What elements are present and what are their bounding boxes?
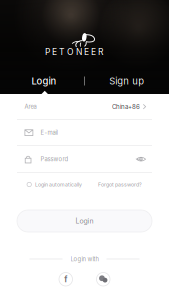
button[interactable]: Login [17, 210, 152, 232]
button[interactable]: Area [0, 94, 169, 120]
staticText: Login [75, 217, 93, 225]
staticText: Login [31, 75, 56, 87]
button[interactable]: Forgot password? [98, 181, 142, 188]
button[interactable]: Login automatically [27, 181, 82, 188]
button[interactable]: Sign in with WeChat [96, 272, 110, 286]
button[interactable]: Sign up [86, 73, 167, 89]
staticText: Login automatically [35, 181, 82, 188]
staticText: Forgot password? [98, 181, 142, 188]
staticText: Sign up [109, 75, 144, 87]
staticText: Password [40, 156, 68, 163]
button[interactable]: Sign in with Facebook [59, 272, 72, 286]
staticText: f [64, 274, 67, 284]
staticText: P E T O N E E R [45, 47, 103, 57]
button[interactable]: Login [2, 73, 86, 89]
staticText: Area [24, 103, 36, 110]
staticText: E-mail [40, 129, 57, 136]
staticText: Login with [70, 255, 98, 263]
button[interactable]: E-mail [0, 120, 169, 146]
button[interactable]: Password [0, 146, 169, 173]
staticText: China+86 [112, 103, 140, 110]
